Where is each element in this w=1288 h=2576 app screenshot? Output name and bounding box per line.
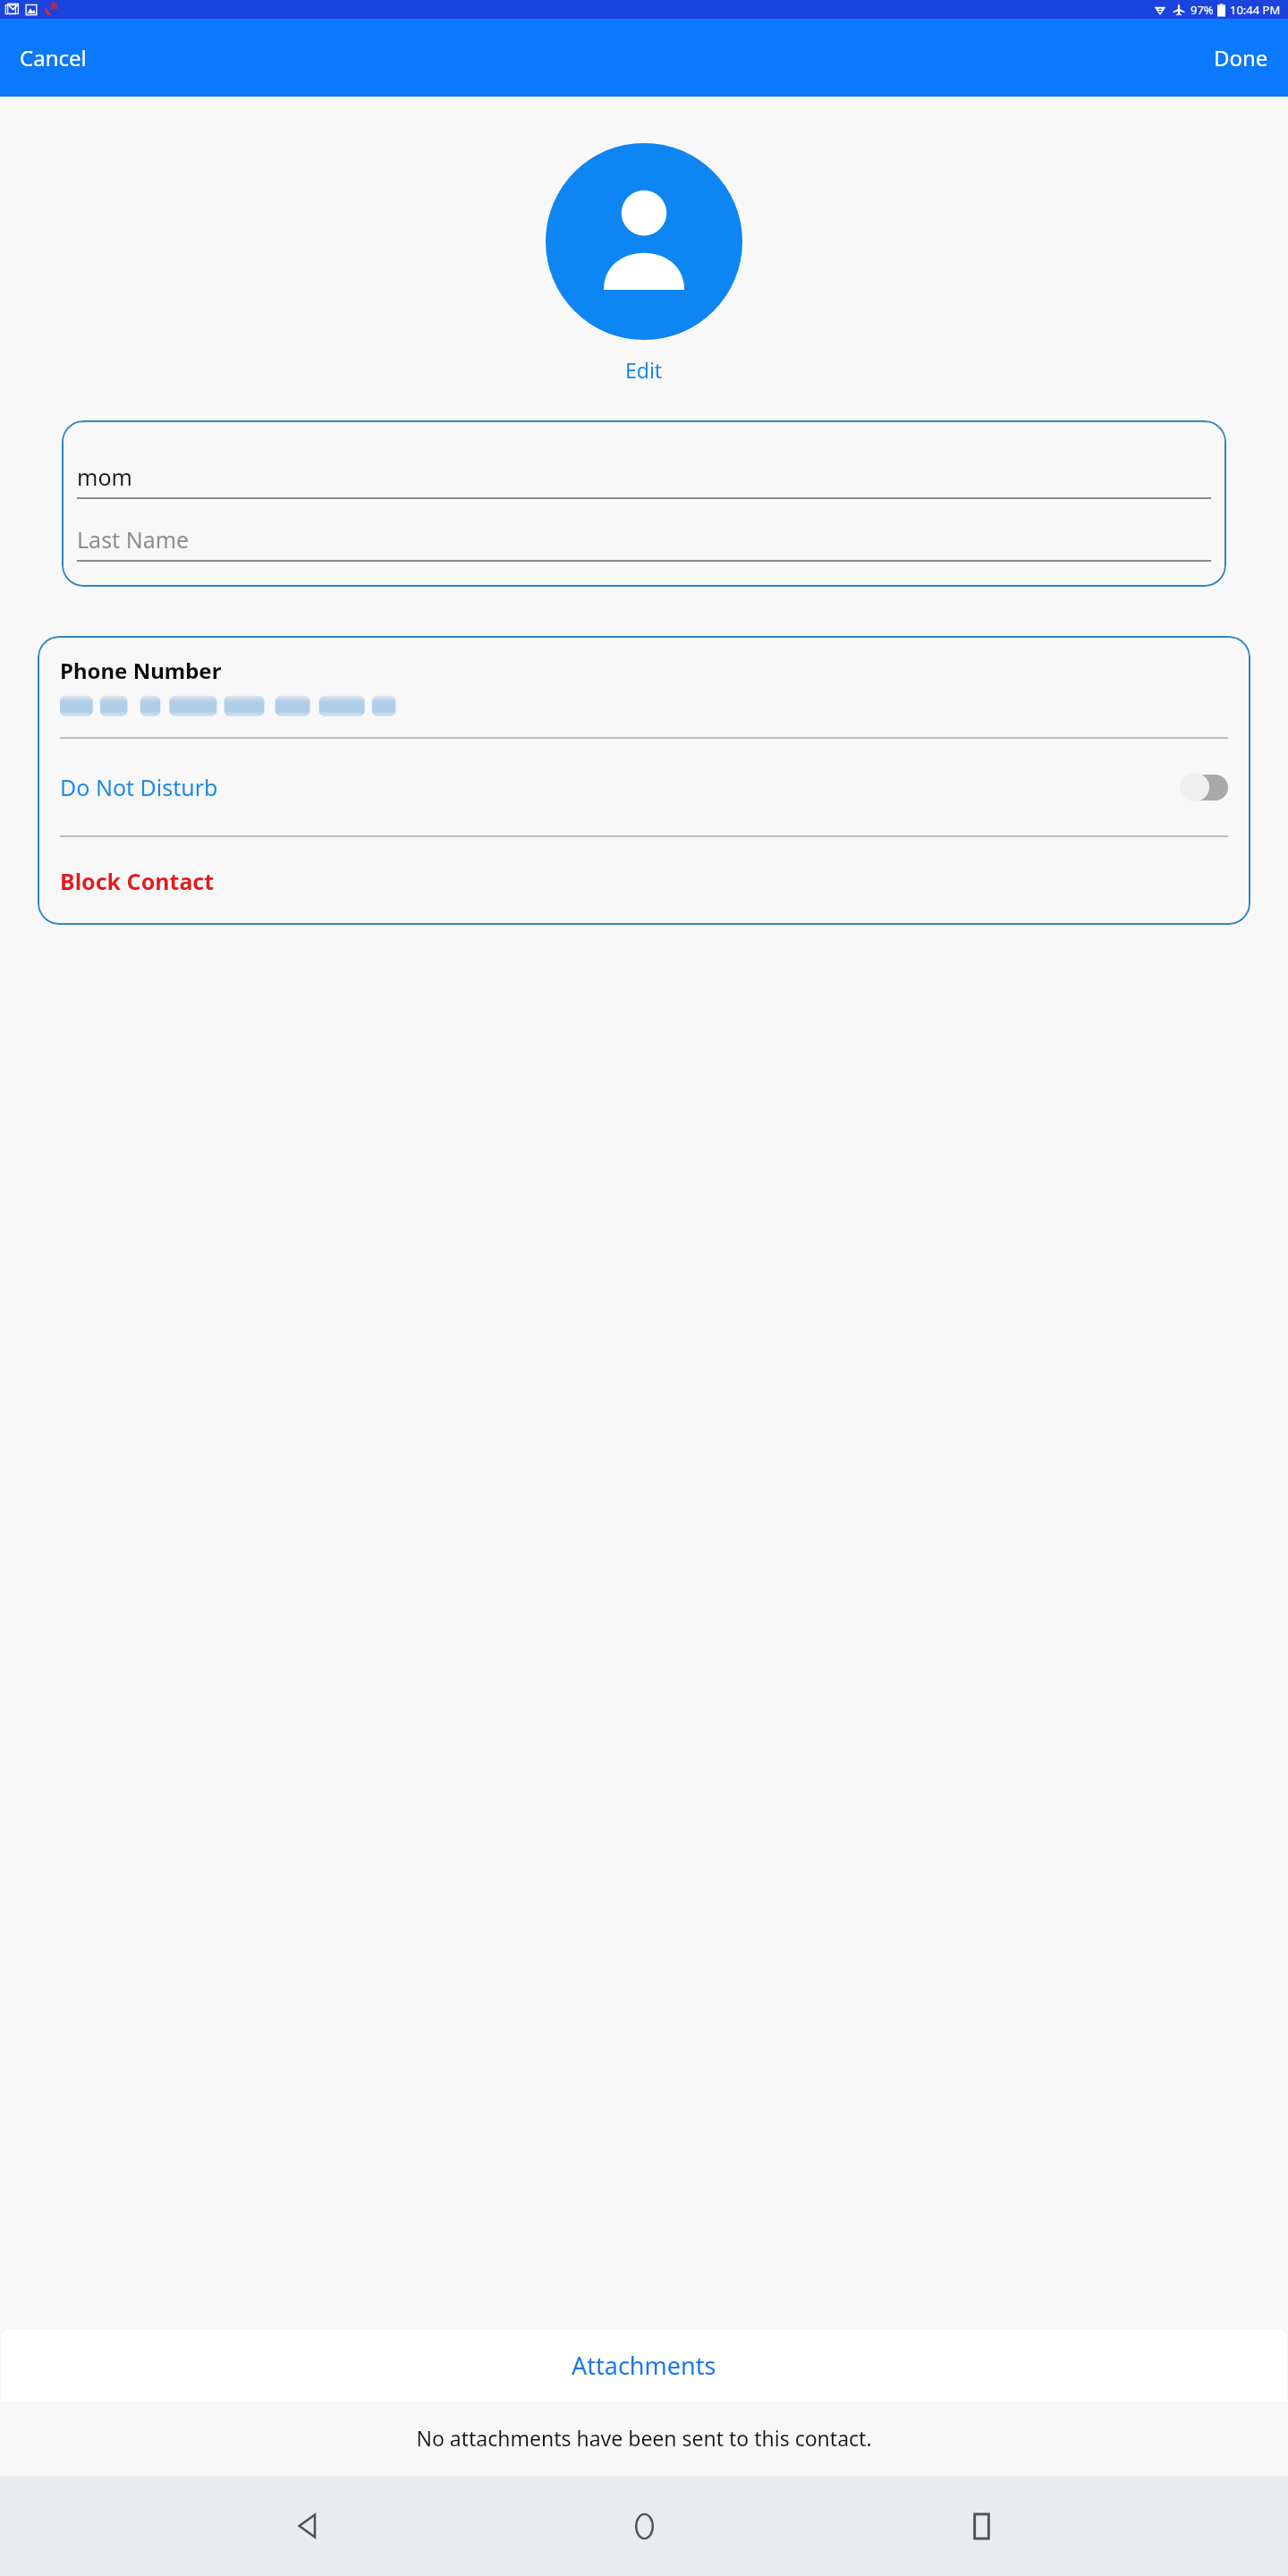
staticText: Phone Number <box>60 656 222 685</box>
staticText: Cancel <box>20 43 87 72</box>
button[interactable]: Edit <box>614 352 674 387</box>
staticText: Do Not Disturb <box>60 772 218 802</box>
button[interactable]: Do Not Disturb <box>38 739 1250 835</box>
staticText: No attachments have been sent to this co… <box>0 2424 1288 2452</box>
button[interactable]: Recent apps <box>951 2495 1012 2556</box>
button[interactable]: Contact photo <box>546 143 742 340</box>
button[interactable]: Back <box>276 2495 337 2556</box>
staticText: Block Contact <box>60 866 215 896</box>
staticText: Last Name <box>77 524 190 555</box>
staticText: Done <box>1214 43 1268 72</box>
button[interactable]: mom <box>62 420 1226 587</box>
button[interactable]: Attachments <box>1 2329 1287 2402</box>
staticText: Edit <box>625 356 663 384</box>
button[interactable]: Block Contact <box>38 837 1250 925</box>
button[interactable]: Done <box>1201 36 1281 80</box>
staticText: Attachments <box>572 2349 716 2382</box>
staticText: 10:44 PM <box>1230 2 1281 18</box>
staticText: 97% <box>1191 2 1214 18</box>
button[interactable]: Cancel <box>7 36 99 80</box>
button[interactable]: Home <box>614 2495 674 2556</box>
staticText: mom <box>77 462 132 492</box>
